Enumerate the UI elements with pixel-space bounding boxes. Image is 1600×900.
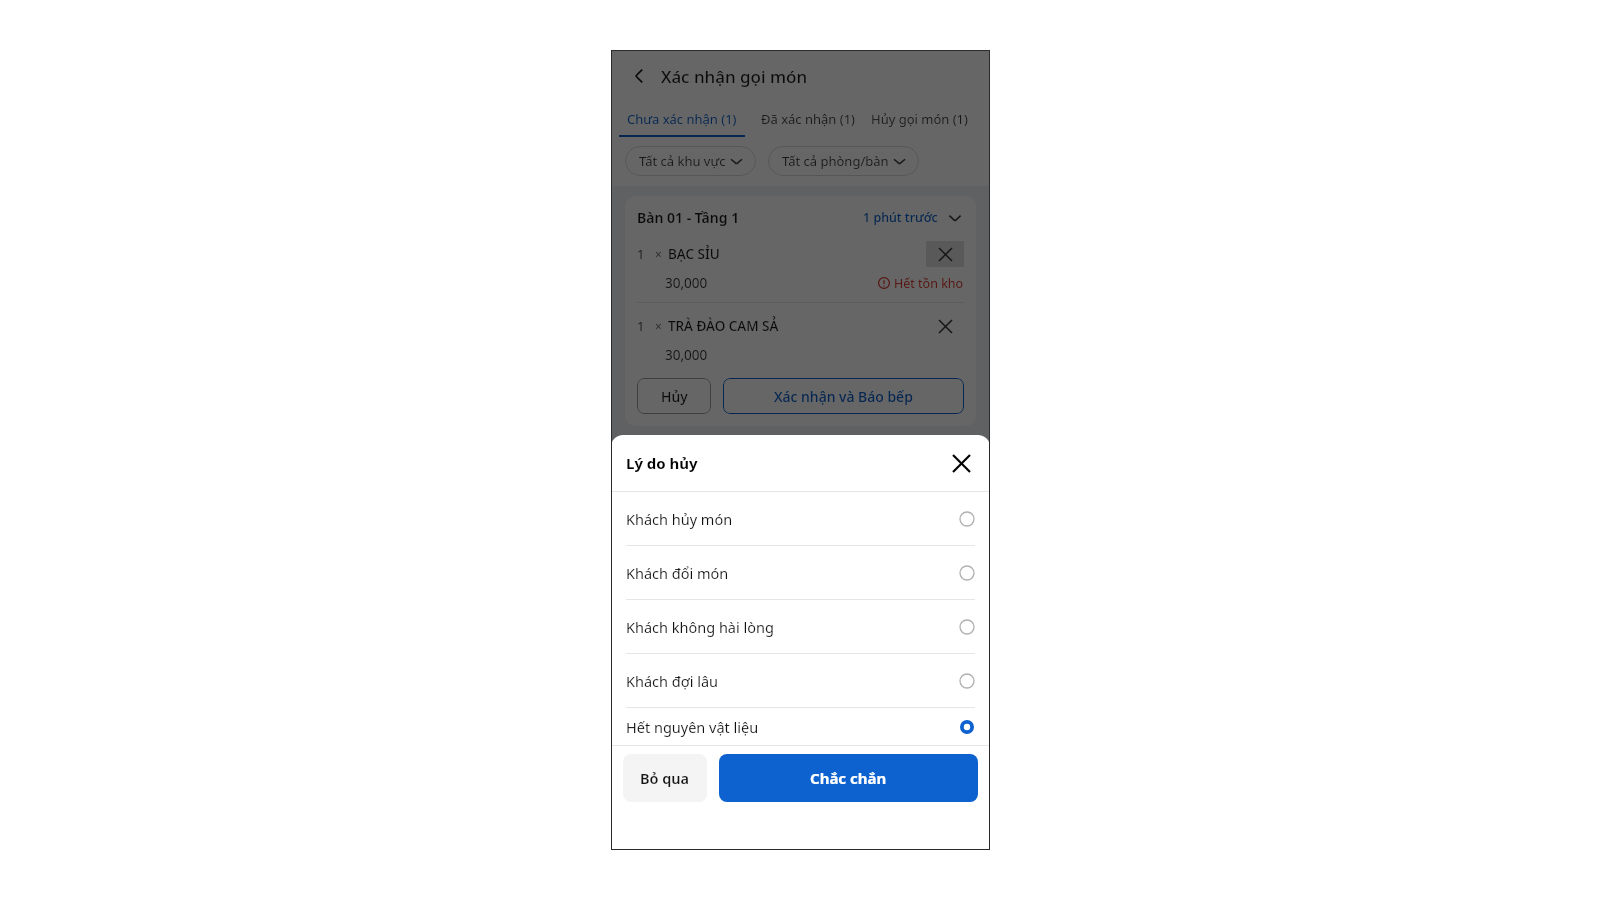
button[interactable]: Hết nguyên vật liệu: [611, 708, 990, 745]
staticText: Xác nhận và Báo bếp: [774, 387, 913, 406]
staticText: Tất cả phòng/bàn: [782, 152, 889, 170]
staticText: Khách không hài lòng: [626, 617, 774, 637]
staticText: Bỏ qua: [640, 768, 690, 788]
staticText: Xác nhận gọi món: [661, 65, 808, 88]
staticText: Tất cả khu vực: [639, 152, 726, 170]
button[interactable]: Back: [625, 62, 653, 90]
button[interactable]: Collapse: [946, 209, 964, 227]
button[interactable]: Khách đổi món: [611, 546, 990, 600]
staticText: Hủy gọi món (1): [871, 110, 968, 128]
button[interactable]: Remove item: [926, 313, 964, 339]
staticText: Khách đợi lâu: [626, 671, 718, 691]
button[interactable]: Tất cả khu vực: [625, 146, 756, 176]
staticText: Chưa xác nhận (1): [627, 110, 737, 128]
staticText: Bàn 01 - Tầng 1: [637, 208, 740, 227]
staticText: Khách hủy món: [626, 509, 733, 529]
button[interactable]: Bỏ qua: [623, 754, 707, 802]
staticText: Hủy: [661, 387, 688, 406]
staticText: 1: [637, 317, 645, 335]
staticText: Hết tồn kho: [894, 275, 964, 292]
button[interactable]: Khách đợi lâu: [611, 654, 990, 708]
button[interactable]: Hủy gọi món (1): [871, 104, 968, 137]
button[interactable]: Khách hủy món: [611, 492, 990, 546]
button[interactable]: Chưa xác nhận (1): [619, 104, 745, 137]
staticText: 30,000: [665, 274, 708, 292]
button[interactable]: Đã xác nhận (1): [761, 104, 855, 137]
staticText: Đã xác nhận (1): [761, 110, 855, 128]
button[interactable]: Xác nhận và Báo bếp: [723, 378, 964, 414]
staticText: BẠC SỈU: [668, 245, 720, 263]
button[interactable]: Chắc chắn: [719, 754, 978, 802]
staticText: 1: [637, 245, 645, 263]
button[interactable]: Hủy: [637, 378, 711, 414]
staticText: 30,000: [665, 346, 708, 364]
staticText: TRÀ ĐÀO CAM SẢ: [668, 317, 779, 335]
button[interactable]: Close: [947, 449, 975, 477]
staticText: Hết nguyên vật liệu: [626, 717, 759, 737]
staticText: Lý do hủy: [626, 453, 698, 473]
staticText: Chắc chắn: [810, 768, 887, 788]
staticText: ×: [655, 246, 662, 262]
button[interactable]: Khách không hài lòng: [611, 600, 990, 654]
button[interactable]: Remove item: [926, 241, 964, 267]
staticText: ×: [655, 318, 662, 334]
staticText: Khách đổi món: [626, 563, 729, 583]
button[interactable]: Tất cả phòng/bàn: [768, 146, 919, 176]
staticText: 1 phút trước: [863, 209, 938, 226]
